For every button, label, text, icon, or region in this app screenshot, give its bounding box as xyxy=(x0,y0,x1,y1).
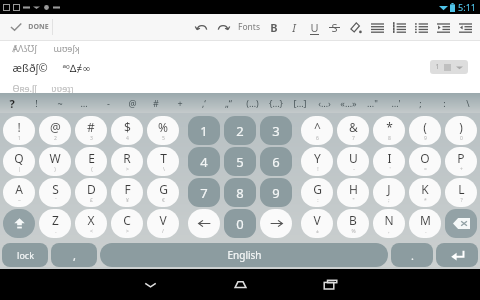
staticText: : xyxy=(443,97,446,109)
button[interactable]: Home xyxy=(213,269,267,300)
button[interactable]: B xyxy=(337,209,369,238)
button[interactable]: ? xyxy=(0,93,24,113)
button[interactable]: Italic xyxy=(284,14,304,40)
button[interactable]: I xyxy=(373,147,405,176)
button[interactable]: ; xyxy=(408,93,432,113)
button[interactable]: …' xyxy=(384,93,408,113)
button[interactable]: U xyxy=(337,147,369,176)
button[interactable]: Backspace xyxy=(445,209,477,238)
button[interactable]: 5 xyxy=(224,147,256,176)
button[interactable]: Y xyxy=(301,147,333,176)
button[interactable]: ~ xyxy=(48,93,72,113)
button[interactable]: % xyxy=(147,116,179,145)
button[interactable]: A xyxy=(3,178,35,207)
button[interactable]: J xyxy=(373,178,405,207)
button[interactable]: ^ xyxy=(301,116,333,145)
button[interactable]: ‚‘ xyxy=(192,93,216,113)
button[interactable]: Redo xyxy=(212,14,234,40)
button[interactable]: 4 xyxy=(188,147,220,176)
button[interactable]: 3 xyxy=(260,116,292,145)
button[interactable]: R xyxy=(111,147,143,176)
button[interactable]: D xyxy=(75,178,107,207)
button[interactable]: 1 xyxy=(188,116,220,145)
staticText: 2 xyxy=(236,122,244,140)
button[interactable]: „“ xyxy=(216,93,240,113)
button[interactable]: Align left xyxy=(366,14,388,40)
button[interactable]: «…» xyxy=(336,93,360,113)
button[interactable]: C xyxy=(111,209,143,238)
button[interactable]: & xyxy=(337,116,369,145)
button[interactable]: …" xyxy=(360,93,384,113)
button[interactable]: […] xyxy=(288,93,312,113)
button[interactable]: @ xyxy=(39,116,71,145)
button[interactable]: F xyxy=(111,178,143,207)
button[interactable]: V xyxy=(301,209,333,238)
button[interactable]: Undo xyxy=(190,14,212,40)
button[interactable]: Zoom control xyxy=(430,60,468,74)
button[interactable]: Underline xyxy=(304,14,324,40)
button[interactable]: 0 xyxy=(224,209,256,238)
button[interactable]: , xyxy=(51,243,97,267)
button[interactable]: Bulleted list xyxy=(410,14,432,40)
button[interactable]: ( xyxy=(409,116,441,145)
button[interactable]: G xyxy=(147,178,179,207)
button[interactable]: DONE xyxy=(0,17,59,37)
button[interactable]: P xyxy=(445,147,477,176)
button[interactable]: V xyxy=(147,209,179,238)
button[interactable]: Move left xyxy=(188,209,220,238)
button[interactable]: O xyxy=(409,147,441,176)
button[interactable]: 2 xyxy=(224,116,256,145)
button[interactable]: lock xyxy=(2,243,48,267)
button[interactable]: Recents xyxy=(303,269,357,300)
button[interactable]: W xyxy=(39,147,71,176)
button[interactable]: Move right xyxy=(260,209,292,238)
button[interactable]: Highlight xyxy=(344,14,366,40)
button[interactable]: Numbered list xyxy=(388,14,410,40)
button[interactable]: M xyxy=(409,209,441,238)
button[interactable]: Shift xyxy=(3,209,35,238)
button[interactable]: Enter xyxy=(436,243,478,267)
staticText: B xyxy=(349,212,357,228)
button[interactable]: … xyxy=(72,93,96,113)
button[interactable]: # xyxy=(75,116,107,145)
button[interactable]: K xyxy=(409,178,441,207)
button[interactable]: \ xyxy=(456,93,480,113)
button[interactable]: * xyxy=(373,116,405,145)
button[interactable]: E xyxy=(75,147,107,176)
button[interactable]: T xyxy=(147,147,179,176)
button[interactable]: Outdent xyxy=(454,14,476,40)
button[interactable]: Q xyxy=(3,147,35,176)
button[interactable]: L xyxy=(445,178,477,207)
button[interactable]: H xyxy=(337,178,369,207)
button[interactable]: ! xyxy=(3,116,35,145)
button[interactable]: ! xyxy=(24,93,48,113)
button[interactable]: ) xyxy=(445,116,477,145)
staticText: Y xyxy=(314,150,321,166)
button[interactable]: Indent xyxy=(432,14,454,40)
button[interactable]: X xyxy=(75,209,107,238)
button[interactable]: @ xyxy=(120,93,144,113)
button[interactable]: Bold xyxy=(264,14,284,40)
button[interactable]: (…) xyxy=(240,93,264,113)
button[interactable]: : xyxy=(432,93,456,113)
button[interactable]: 9 xyxy=(260,178,292,207)
button[interactable]: Strikethrough xyxy=(324,14,344,40)
button[interactable]: # xyxy=(144,93,168,113)
button[interactable]: {…} xyxy=(264,93,288,113)
button[interactable]: 6 xyxy=(260,147,292,176)
button[interactable]: - xyxy=(96,93,120,113)
button[interactable]: ‹…› xyxy=(312,93,336,113)
button[interactable]: English xyxy=(100,243,388,267)
button[interactable]: $ xyxy=(111,116,143,145)
button[interactable]: Back xyxy=(123,269,177,300)
button[interactable]: G xyxy=(301,178,333,207)
button[interactable]: S xyxy=(39,178,71,207)
button[interactable]: Z xyxy=(39,209,71,238)
button[interactable]: N xyxy=(373,209,405,238)
button[interactable]: 7 xyxy=(188,178,220,207)
button[interactable]: + xyxy=(168,93,192,113)
button[interactable]: 8 xyxy=(224,178,256,207)
button[interactable]: . xyxy=(391,243,433,267)
button[interactable]: Fonts xyxy=(234,16,264,38)
staticText: 7 xyxy=(200,184,208,202)
